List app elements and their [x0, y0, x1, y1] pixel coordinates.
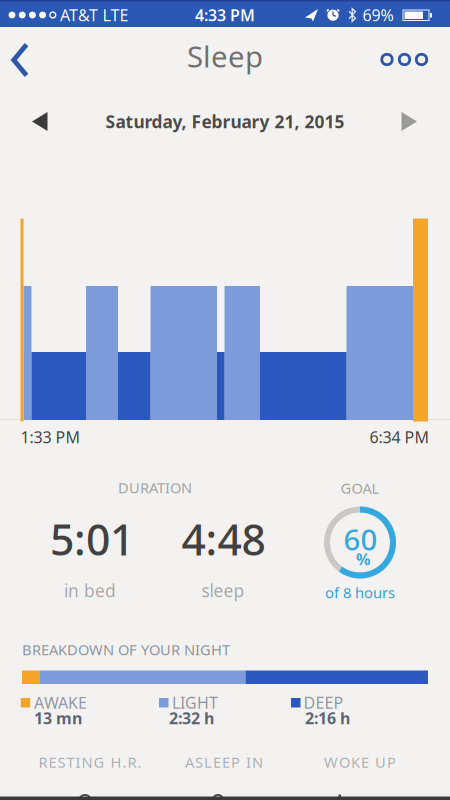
- staticText: 6:34 PM: [369, 426, 429, 448]
- staticText: 5:01: [50, 511, 134, 567]
- staticText: LIGHT: [172, 692, 218, 713]
- button[interactable]: [387, 99, 431, 143]
- staticText: of 8 hours: [325, 583, 395, 602]
- staticText: 60: [343, 519, 377, 558]
- button[interactable]: [18, 99, 62, 143]
- staticText: Sleep: [187, 36, 263, 75]
- staticText: 13 mn: [34, 707, 82, 729]
- staticText: GOAL: [340, 478, 379, 498]
- staticText: A S L E E P I N: [185, 752, 263, 772]
- button[interactable]: [0, 38, 42, 82]
- staticText: 69%: [362, 4, 393, 26]
- staticText: 1:33 PM: [20, 426, 80, 448]
- staticText: 4:48: [181, 511, 265, 567]
- staticText: LTE: [102, 4, 128, 26]
- staticText: %: [356, 548, 370, 570]
- staticText: 2:32 h: [169, 707, 214, 729]
- staticText: AWAKE: [34, 692, 87, 713]
- staticText: 4:33 PM: [195, 4, 255, 26]
- staticText: BREAKDOWN OF YOUR NIGHT: [22, 640, 230, 659]
- staticText: 2:16 h: [305, 707, 350, 729]
- staticText: Saturday, February 21, 2015: [105, 110, 344, 133]
- staticText: sleep: [201, 579, 244, 602]
- staticText: DEEP: [303, 692, 343, 713]
- staticText: W O K E U P: [324, 752, 396, 772]
- staticText: in bed: [64, 579, 116, 602]
- staticText: R E S T I N G H . R .: [38, 752, 141, 772]
- staticText: DURATION: [118, 478, 192, 497]
- button[interactable]: [375, 37, 433, 81]
- staticText: AT&T: [60, 4, 98, 26]
